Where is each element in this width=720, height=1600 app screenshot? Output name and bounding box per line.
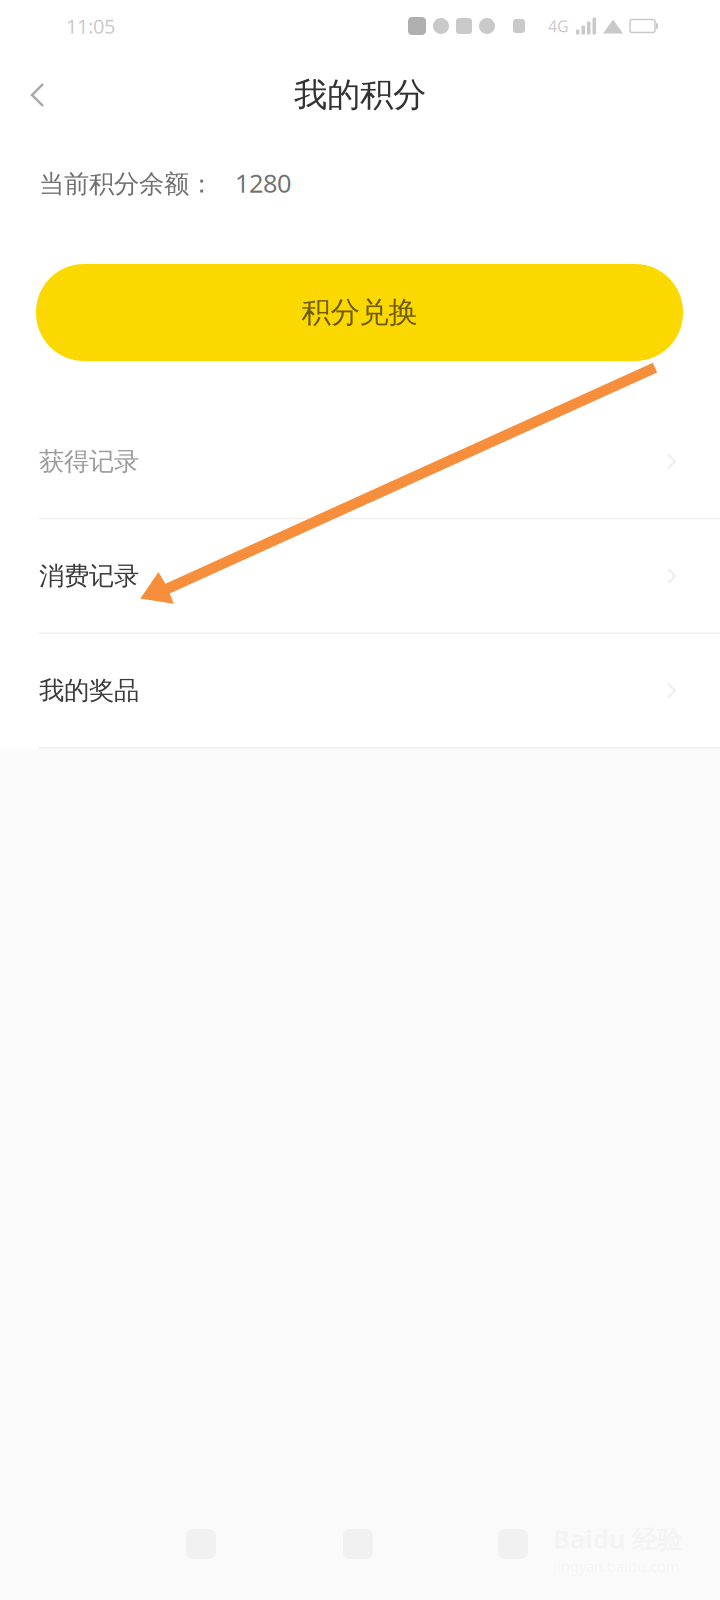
staticText: 获得记录 xyxy=(39,446,139,477)
button[interactable]: 获得记录 xyxy=(0,405,720,518)
button[interactable]: Recents xyxy=(498,1504,528,1584)
button[interactable]: Home xyxy=(343,1504,373,1584)
button[interactable]: 我的奖品 xyxy=(0,634,720,747)
button[interactable]: 积分兑换 xyxy=(36,264,683,361)
staticText: 11:05 xyxy=(66,13,115,39)
staticText: 我的积分 xyxy=(294,74,426,115)
staticText: 当前积分余额： 1280 xyxy=(39,166,291,200)
staticText: 4G xyxy=(548,15,569,37)
button[interactable]: 消费记录 xyxy=(0,519,720,632)
staticText: 消费记录 xyxy=(39,560,139,591)
button[interactable]: Back xyxy=(186,1504,216,1584)
button[interactable]: Back xyxy=(0,52,71,138)
staticText: 我的奖品 xyxy=(39,675,139,706)
staticText: 积分兑换 xyxy=(301,294,417,330)
